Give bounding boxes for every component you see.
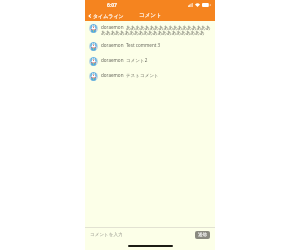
button[interactable]: doraemon Test comment 3 (85, 39, 215, 54)
staticText: doraemon テストコメント (101, 72, 159, 78)
button[interactable]: コメントを入力 (90, 230, 195, 240)
button[interactable]: doraemon テストコメント (85, 69, 215, 84)
staticText: コメントを入力 (90, 232, 123, 238)
staticText: タイムライン (93, 13, 124, 19)
button[interactable]: doraemon あああああああああああああああああああああああああああああああ… (85, 21, 215, 39)
button[interactable]: Back (85, 12, 126, 20)
staticText: doraemon Test comment 3 (101, 42, 161, 48)
staticText: 6:07 (107, 2, 117, 9)
other: Back (88, 14, 92, 18)
staticText: コメント (139, 12, 162, 19)
button[interactable]: 送信 (195, 231, 210, 239)
staticText: 送信 (198, 232, 207, 238)
staticText: doraemon コメント2 (101, 57, 148, 63)
button[interactable]: doraemon コメント2 (85, 54, 215, 69)
staticText: doraemon あああああああああああああああああああああああああああああああ… (101, 24, 212, 36)
